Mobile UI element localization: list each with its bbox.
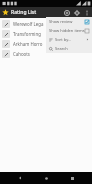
button[interactable]: Edit Werewolf Lega	[2, 20, 10, 28]
button[interactable]: Add	[62, 8, 72, 18]
button[interactable]: Edit Werewolf Lega	[0, 19, 92, 29]
button[interactable]: Edit Cahoots	[2, 50, 10, 58]
staticText: Cahoots	[13, 51, 30, 57]
staticText: Search	[55, 46, 89, 51]
staticText: Show hidden items	[49, 28, 85, 33]
button[interactable]: Edit Transforming	[2, 30, 10, 38]
button[interactable]: Show hidden items	[46, 26, 92, 35]
button[interactable]: Show review buttons	[46, 17, 92, 26]
staticText: Show review buttons	[49, 19, 85, 24]
button[interactable]: Edit Cahoots	[0, 49, 92, 59]
button[interactable]: Edit Arkham Horro	[0, 39, 92, 49]
staticText: Arkham Horro	[13, 41, 43, 47]
button[interactable]: Home	[40, 172, 52, 184]
button[interactable]: Random pick	[72, 8, 82, 18]
button[interactable]: Recent apps	[66, 172, 78, 184]
staticText: Sort by...	[55, 37, 86, 42]
button[interactable]: Search	[46, 44, 92, 53]
button[interactable]: More options	[82, 8, 91, 17]
button[interactable]: Edit Transforming	[0, 29, 92, 39]
button[interactable]: Back	[14, 172, 26, 184]
staticText: Rating List	[11, 9, 62, 16]
staticText: Werewolf Lega	[13, 21, 44, 27]
button[interactable]: Edit Arkham Horro	[2, 40, 10, 48]
staticText: Transforming	[13, 31, 41, 37]
button[interactable]: Sort by...	[46, 35, 92, 44]
